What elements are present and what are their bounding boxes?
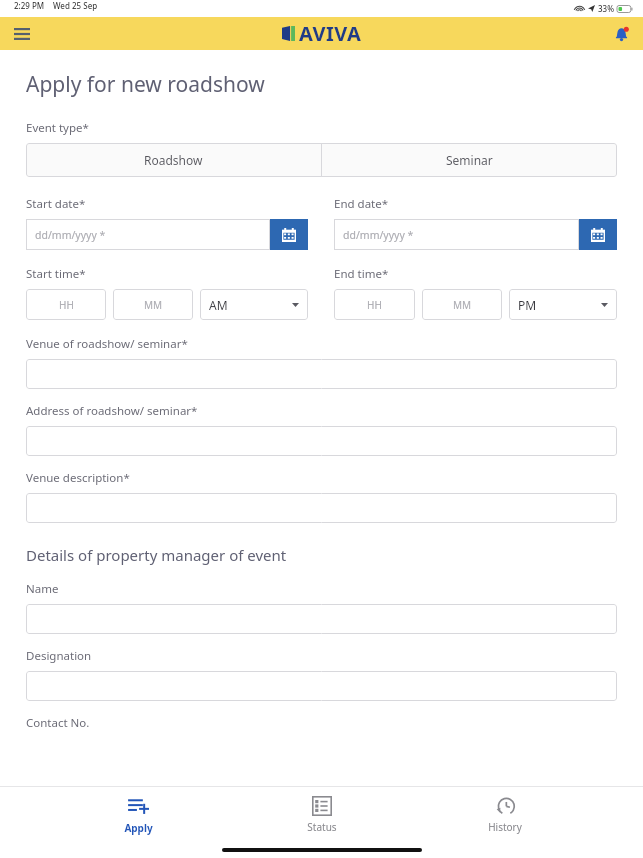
staticText: dd/mm/yyyy * xyxy=(35,228,106,242)
button[interactable]: Pick date xyxy=(270,219,308,250)
button[interactable] xyxy=(26,359,617,389)
button[interactable]: Menu xyxy=(8,20,36,48)
staticText: Start date* xyxy=(26,196,86,212)
staticText: AM xyxy=(209,297,228,313)
button[interactable]: dd/mm/yyyy * xyxy=(334,219,579,250)
button[interactable]: HH xyxy=(26,289,106,320)
staticText: Venue description* xyxy=(26,470,130,486)
staticText: End date* xyxy=(334,196,389,212)
staticText: Wed 25 Sep xyxy=(53,0,98,11)
staticText: Apply xyxy=(124,821,153,835)
button[interactable] xyxy=(26,671,617,701)
button[interactable]: Roadshow xyxy=(26,143,321,177)
staticText: Status xyxy=(307,820,337,834)
staticText: 2:29 PM xyxy=(14,0,45,11)
button[interactable]: MM xyxy=(422,289,502,320)
button[interactable] xyxy=(26,426,617,456)
staticText: MM xyxy=(453,298,472,312)
staticText: Venue of roadshow/ seminar* xyxy=(26,336,188,352)
button[interactable]: Status xyxy=(277,796,367,834)
staticText: Start time* xyxy=(26,266,86,282)
staticText: History xyxy=(488,820,522,834)
staticText: Event type* xyxy=(26,120,89,136)
button[interactable]: History xyxy=(460,795,550,834)
staticText: Apply for new roadshow xyxy=(26,70,265,99)
staticText: Roadshow xyxy=(144,152,203,168)
button[interactable] xyxy=(26,604,617,634)
staticText: 33% xyxy=(598,3,614,14)
staticText: End time* xyxy=(334,266,389,282)
staticText: Address of roadshow/ seminar* xyxy=(26,403,198,419)
staticText: Details of property manager of event xyxy=(26,545,287,565)
staticText: MM xyxy=(144,298,163,312)
button[interactable]: AM xyxy=(200,289,308,320)
button[interactable]: MM xyxy=(113,289,193,320)
staticText: AVIVA xyxy=(299,20,362,47)
staticText: Name xyxy=(26,581,59,597)
button[interactable]: HH xyxy=(334,289,415,320)
staticText: Designation xyxy=(26,648,92,664)
button[interactable] xyxy=(26,493,617,523)
button[interactable]: Apply xyxy=(93,795,183,835)
staticText: Seminar xyxy=(446,152,493,168)
staticText: PM xyxy=(518,297,537,313)
staticText: dd/mm/yyyy * xyxy=(343,228,414,242)
button[interactable]: Pick date xyxy=(579,219,617,250)
button[interactable]: PM xyxy=(509,289,617,320)
staticText: HH xyxy=(59,298,74,312)
button[interactable]: dd/mm/yyyy * xyxy=(26,219,270,250)
staticText: Contact No. xyxy=(26,715,90,731)
button[interactable]: Notifications xyxy=(608,21,634,47)
staticText: HH xyxy=(367,298,382,312)
button[interactable]: Seminar xyxy=(322,143,617,177)
